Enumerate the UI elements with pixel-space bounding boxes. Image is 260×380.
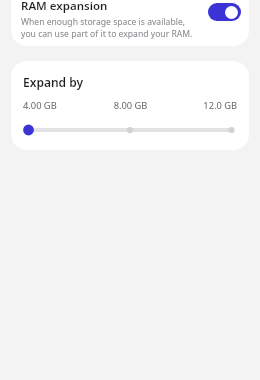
button[interactable]: Expand by bbox=[11, 61, 249, 150]
button[interactable]: RAM expansion bbox=[11, 0, 249, 46]
staticText: 12.0 GB bbox=[166, 99, 237, 112]
staticText: 8.00 GB bbox=[95, 99, 166, 112]
staticText: RAM expansion bbox=[21, 0, 108, 14]
staticText: Expand by bbox=[23, 74, 84, 90]
button[interactable]: Expand by slider, 4.00 GB bbox=[23, 121, 237, 139]
button[interactable]: RAM expansion toggle, on bbox=[208, 3, 241, 21]
staticText: 4.00 GB bbox=[23, 99, 95, 112]
staticText: When enough storage space is available, … bbox=[21, 16, 202, 40]
